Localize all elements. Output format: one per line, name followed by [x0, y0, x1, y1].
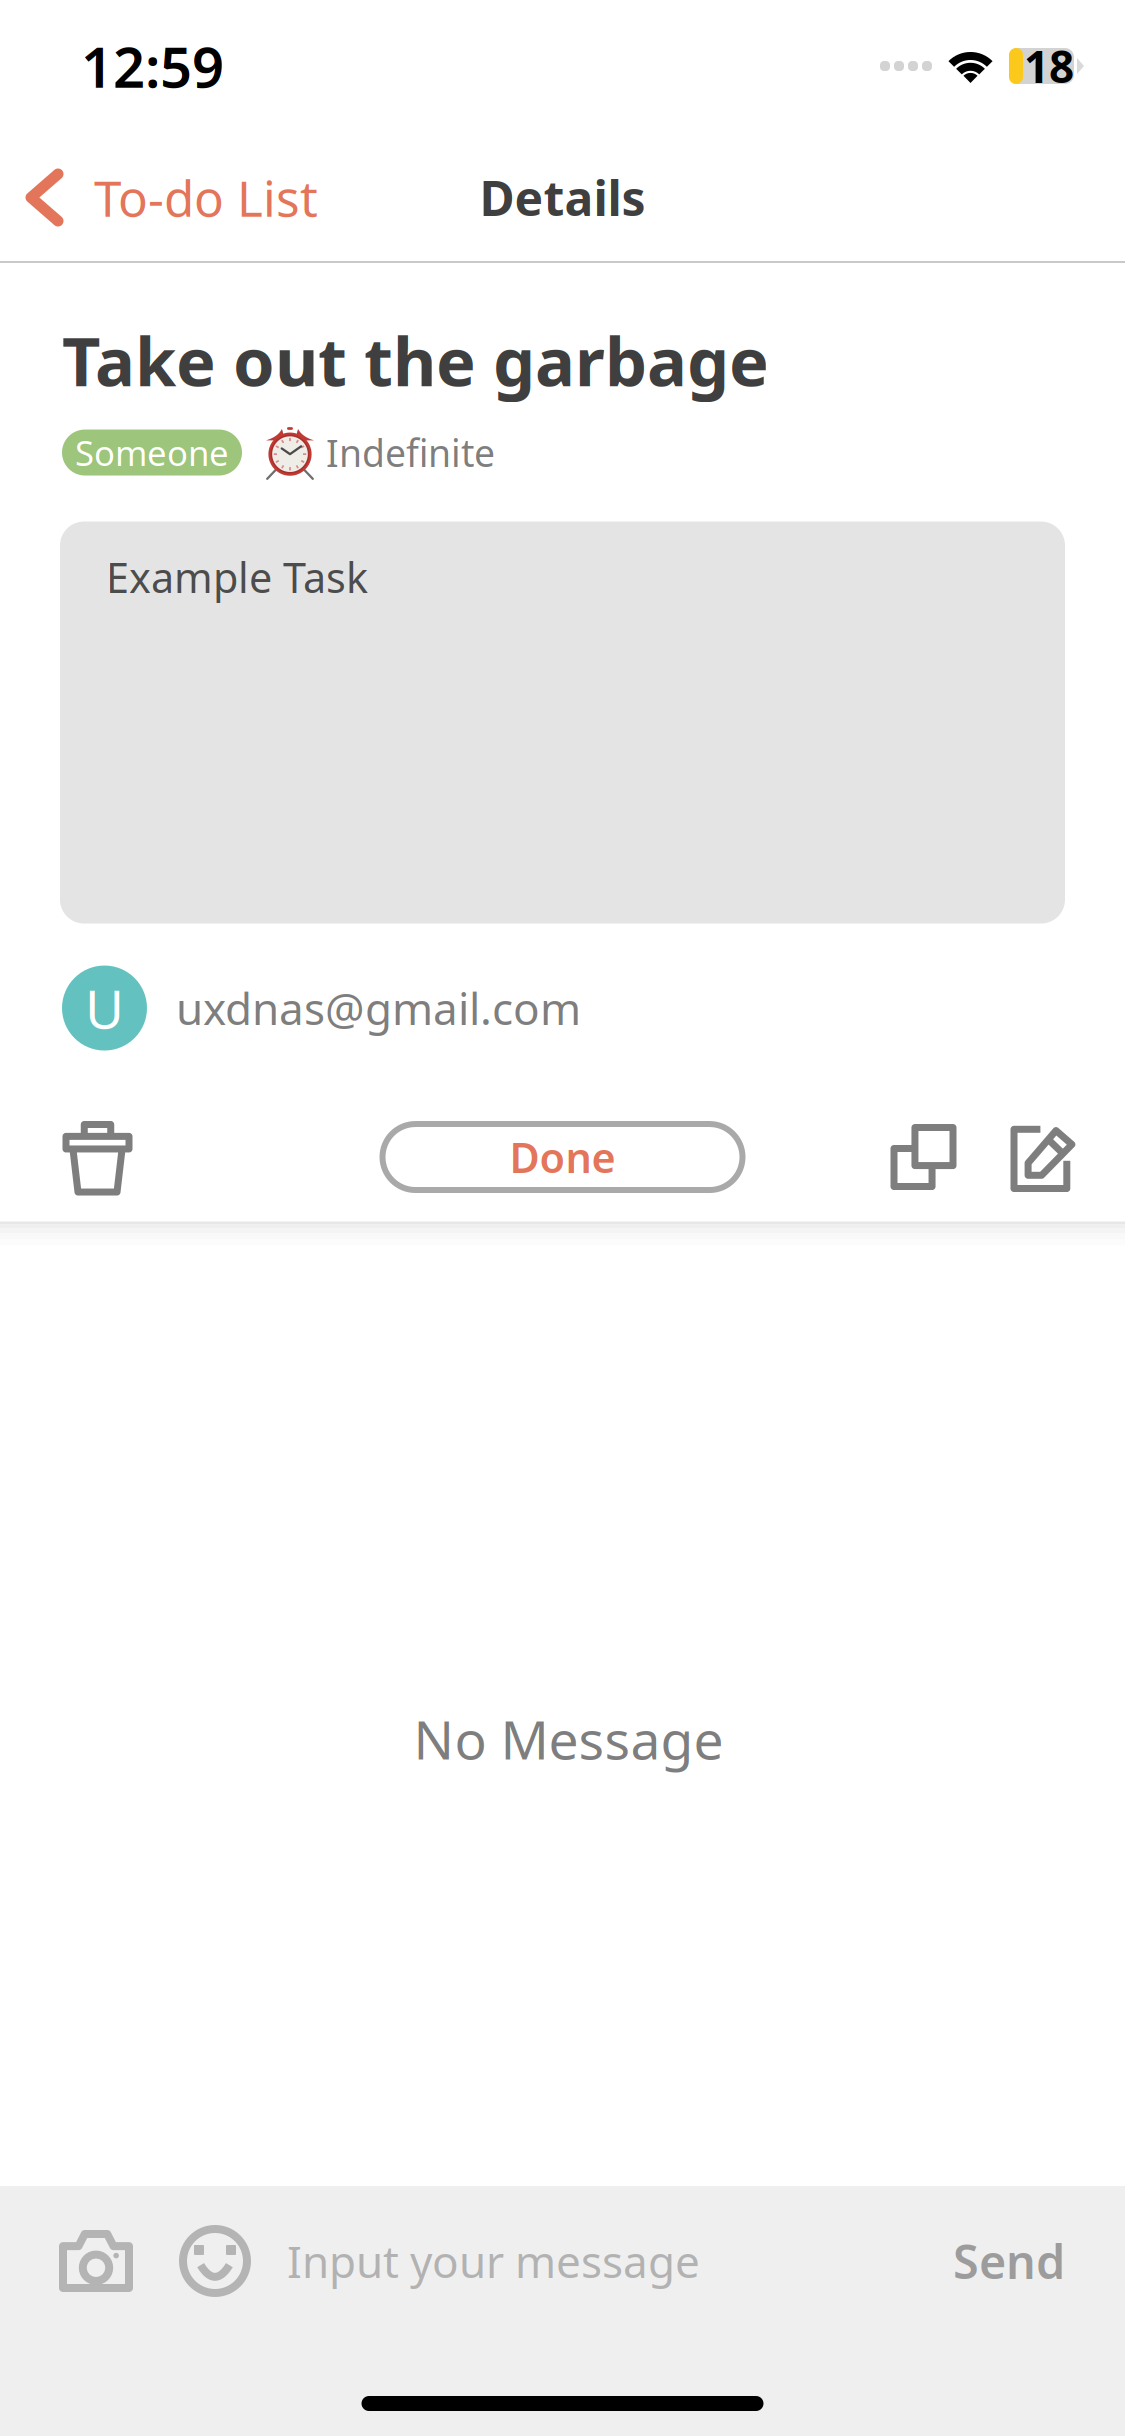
button[interactable]: Camera [48, 2210, 183, 2312]
staticText: U [85, 973, 124, 1043]
staticText: Send [953, 2230, 1065, 2292]
staticText: Done [509, 1130, 615, 1184]
button[interactable]: Edit [983, 1096, 1125, 1217]
button[interactable]: Send [945, 2206, 1073, 2316]
button[interactable]: Delete [0, 1097, 169, 1217]
staticText: 12:59 [81, 29, 224, 103]
staticText: Someone [75, 429, 229, 475]
staticText: No Message [413, 1703, 723, 1774]
staticText: Take out the garbage [62, 316, 769, 404]
button[interactable]: To-do List [0, 132, 562, 263]
staticText: Indefinite [326, 428, 495, 477]
staticText: Details [479, 166, 645, 229]
staticText: uxdnas@gmail.com [176, 979, 581, 1037]
button[interactable]: Emoji [183, 2210, 267, 2312]
button[interactable]: Duplicate [860, 1096, 983, 1217]
button[interactable]: Done [382, 1097, 742, 1217]
staticText: Example Task [106, 549, 368, 604]
staticText: To-do List [94, 165, 318, 230]
staticText: Input your message [287, 2232, 700, 2290]
staticText: 18 [1024, 37, 1074, 95]
